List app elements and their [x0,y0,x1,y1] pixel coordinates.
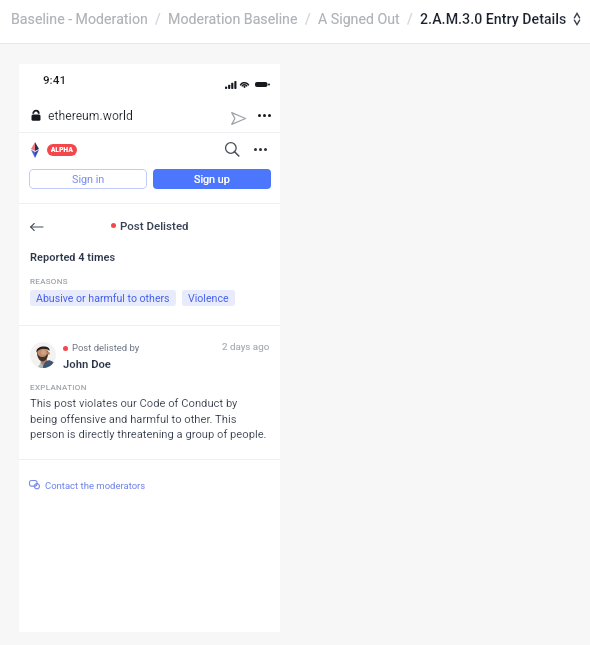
staticText: Sign in [72,173,105,186]
staticText: / [155,11,161,27]
button[interactable]: A Signed Out [318,11,400,28]
staticText: ALPHA [51,146,73,154]
staticText: 9:41 [43,73,67,87]
button[interactable]: Abusive or harmful to others [36,292,170,304]
button[interactable]: Search [222,139,242,159]
staticText: REASONS [30,277,68,286]
staticText: Baseline - Moderation [11,11,148,28]
button[interactable]: More options [250,143,270,155]
staticText: Contact the moderators [45,480,146,491]
staticText: 2 days ago [222,341,270,352]
staticText: Post Delisted [120,219,189,232]
staticText: Violence [188,292,229,304]
staticText: 2.A.M.3.0 Entry Details [420,11,567,28]
button[interactable]: Moderation Baseline [168,11,298,28]
button[interactable]: Contact the moderators [29,476,146,494]
staticText: Reported 4 times [30,251,116,264]
button[interactable]: Sign up [153,169,271,189]
button[interactable]: Expand [574,12,580,26]
button[interactable]: Violence [188,292,229,304]
button[interactable]: 2.A.M.3.0 Entry Details [420,11,567,28]
staticText: Sign up [194,173,230,186]
staticText: A Signed Out [318,11,400,28]
button[interactable]: More options [254,109,274,121]
button[interactable]: Sign in [29,169,147,189]
staticText: John Doe [63,358,111,371]
button[interactable]: Baseline - Moderation [11,11,148,28]
staticText: EXPLANATION [30,383,87,392]
staticText: Moderation Baseline [168,11,298,28]
staticText: This post violates our Code of Conduct b… [30,397,267,441]
staticText: / [407,11,413,27]
button[interactable]: Back [26,217,46,237]
staticText: Post delisted by [72,342,140,353]
staticText: Abusive or harmful to others [36,292,170,304]
staticText: ethereum.world [48,109,133,123]
button[interactable]: Share [228,108,248,128]
staticText: / [305,11,311,27]
